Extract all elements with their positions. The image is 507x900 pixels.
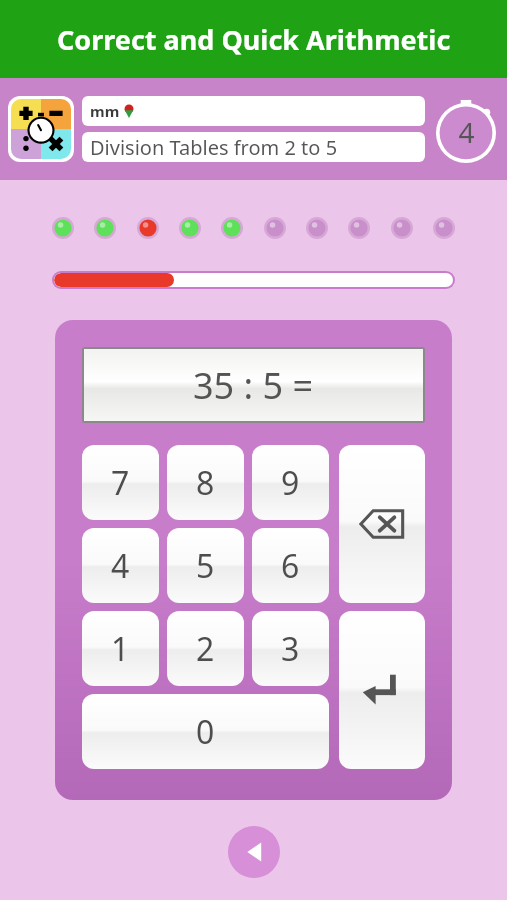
button[interactable]: Backspace — [339, 445, 425, 603]
staticText: 3 — [281, 627, 300, 671]
button[interactable]: App icon — [11, 99, 71, 159]
button[interactable]: 4 — [82, 528, 159, 603]
button[interactable]: 6 — [252, 528, 329, 603]
button[interactable]: 7 — [82, 445, 159, 520]
staticText: 4 — [111, 544, 130, 588]
staticText: 35 : 5 = — [193, 361, 314, 410]
staticText: 5 — [196, 544, 215, 588]
button[interactable]: 1 — [82, 611, 159, 686]
staticText: 8 — [196, 461, 215, 505]
button[interactable]: 5 — [167, 528, 244, 603]
staticText: Division Tables from 2 to 5 — [90, 134, 338, 161]
button[interactable]: 3 — [252, 611, 329, 686]
staticText: 7 — [111, 461, 130, 505]
staticText: 0 — [196, 710, 215, 754]
button[interactable]: Enter — [339, 611, 425, 769]
staticText: 9 — [281, 461, 300, 505]
button[interactable]: 2 — [167, 611, 244, 686]
button[interactable]: 9 — [252, 445, 329, 520]
button[interactable]: 0 — [82, 694, 329, 769]
staticText: mm — [90, 101, 120, 121]
staticText: 4 — [458, 113, 475, 151]
button[interactable]: Back — [228, 826, 280, 878]
staticText: Correct and Quick Arithmetic — [57, 21, 451, 58]
button[interactable]: 8 — [167, 445, 244, 520]
staticText: 2 — [196, 627, 215, 671]
staticText: 6 — [281, 544, 300, 588]
staticText: 1 — [111, 627, 130, 671]
